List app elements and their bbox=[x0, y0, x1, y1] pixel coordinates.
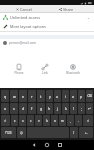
staticText: Unlimited access bbox=[10, 15, 40, 20]
button[interactable]: s bbox=[10, 103, 18, 114]
button[interactable]: Link bbox=[38, 63, 52, 76]
button[interactable]: , bbox=[67, 115, 74, 126]
button[interactable]: Share bbox=[58, 6, 75, 13]
button[interactable]: Recents bbox=[55, 140, 65, 150]
button[interactable]: person@mail.com bbox=[0, 39, 94, 47]
button[interactable]: / bbox=[70, 127, 78, 138]
button[interactable]: Back bbox=[29, 140, 39, 150]
staticText: v bbox=[38, 119, 40, 123]
button[interactable]: h bbox=[46, 103, 53, 114]
staticText: ☺ bbox=[20, 131, 24, 134]
staticText: / bbox=[73, 131, 75, 135]
button[interactable]: n bbox=[51, 115, 58, 126]
staticText: q bbox=[4, 94, 7, 99]
staticText: d bbox=[22, 106, 25, 111]
staticText: g bbox=[40, 106, 43, 111]
button[interactable]: ↵ bbox=[86, 103, 93, 114]
staticText: j bbox=[57, 106, 58, 111]
staticText: Share bbox=[63, 7, 74, 12]
button[interactable]: w bbox=[10, 90, 18, 102]
button[interactable]: f bbox=[28, 103, 36, 114]
staticText: a bbox=[4, 106, 6, 111]
staticText: h bbox=[48, 106, 51, 111]
staticText: l bbox=[73, 106, 74, 111]
button[interactable]: k bbox=[62, 103, 69, 114]
staticText: i bbox=[65, 94, 66, 99]
staticText: u bbox=[56, 94, 59, 99]
button[interactable]: g bbox=[37, 103, 45, 114]
staticText: Link bbox=[42, 71, 48, 75]
staticText: . bbox=[78, 119, 79, 123]
button[interactable]: Unlimited access bbox=[0, 13, 94, 22]
staticText: y bbox=[49, 94, 51, 99]
button[interactable]: y bbox=[46, 90, 53, 102]
staticText: Phone bbox=[14, 71, 24, 75]
staticText: k bbox=[65, 106, 67, 111]
button[interactable]: u bbox=[54, 90, 61, 102]
staticText: r bbox=[31, 94, 33, 99]
button[interactable]: Phone bbox=[10, 63, 28, 76]
staticText: w bbox=[13, 94, 16, 99]
button[interactable]: ☺ bbox=[17, 127, 26, 138]
staticText: c bbox=[30, 119, 32, 123]
button[interactable]: z bbox=[11, 115, 18, 126]
staticText: More layout options bbox=[10, 24, 46, 29]
button[interactable]: ; bbox=[78, 103, 85, 114]
staticText: ; bbox=[81, 106, 82, 111]
button[interactable]: p bbox=[78, 90, 85, 102]
button[interactable]: o bbox=[70, 90, 77, 102]
staticText: t bbox=[40, 94, 42, 99]
staticText: person@mail.com bbox=[9, 41, 37, 45]
button[interactable]: ← bbox=[79, 127, 93, 138]
button[interactable]: t bbox=[37, 90, 45, 102]
staticText: , bbox=[70, 119, 71, 123]
staticText: ⌫ bbox=[87, 94, 92, 98]
staticText: ?123 bbox=[5, 131, 12, 135]
button[interactable]: x bbox=[19, 115, 26, 126]
button[interactable]: More layout options bbox=[0, 22, 94, 31]
button[interactable]: ⇧ bbox=[1, 115, 10, 126]
staticText: ← bbox=[85, 131, 88, 134]
staticText: Cancel bbox=[20, 7, 32, 12]
staticText: e bbox=[22, 94, 24, 99]
button[interactable]: v bbox=[35, 115, 42, 126]
button[interactable]: ⌫ bbox=[86, 90, 93, 102]
button[interactable]: m bbox=[59, 115, 66, 126]
staticText: ⇧ bbox=[4, 119, 7, 122]
button[interactable]: . bbox=[75, 115, 82, 126]
staticText: Bluetooth bbox=[66, 71, 80, 75]
button[interactable]: a bbox=[1, 103, 9, 114]
button[interactable]: b bbox=[43, 115, 50, 126]
button[interactable]: Bluetooth bbox=[62, 63, 84, 76]
button[interactable]: d bbox=[19, 103, 27, 114]
staticText: z bbox=[14, 119, 16, 123]
button[interactable]: e bbox=[19, 90, 27, 102]
button[interactable]: Cancel bbox=[15, 6, 33, 13]
button[interactable]: More options bbox=[85, 15, 91, 21]
staticText: o bbox=[72, 94, 75, 99]
button[interactable]: q bbox=[1, 90, 9, 102]
staticText: ⇧ bbox=[87, 119, 90, 122]
button[interactable]: j bbox=[54, 103, 61, 114]
staticText: s bbox=[13, 106, 15, 111]
staticText: ↵ bbox=[88, 107, 91, 111]
staticText: n bbox=[54, 119, 56, 123]
staticText: b bbox=[46, 119, 48, 123]
staticText: p bbox=[80, 94, 83, 99]
staticText: x bbox=[22, 119, 24, 123]
button[interactable]: r bbox=[28, 90, 36, 102]
button[interactable]: Home bbox=[42, 140, 52, 150]
button[interactable]: i bbox=[62, 90, 69, 102]
button[interactable]: ⇧ bbox=[83, 115, 93, 126]
button[interactable]: c bbox=[27, 115, 34, 126]
button[interactable]: l bbox=[70, 103, 77, 114]
staticText: m bbox=[61, 119, 64, 123]
staticText: f bbox=[31, 106, 33, 111]
button[interactable]: ?123 bbox=[1, 127, 16, 138]
